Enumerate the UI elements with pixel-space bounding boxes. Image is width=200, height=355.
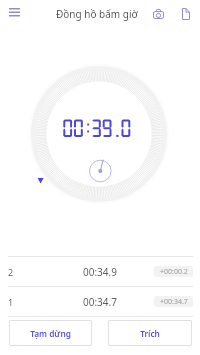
button[interactable]: 1	[0, 287, 200, 316]
staticText: 00:34.9	[83, 265, 117, 279]
staticText: +00:00.2	[160, 267, 188, 277]
button[interactable]: Trích	[108, 320, 192, 346]
button[interactable]: Tạm dừng	[9, 320, 92, 346]
button[interactable]: Menu	[4, 2, 24, 22]
staticText: 1	[8, 296, 14, 308]
button[interactable]: Document	[176, 4, 195, 23]
staticText: 00:34.7	[83, 295, 117, 309]
staticText: Tạm dừng	[30, 328, 71, 339]
staticText: +00:34.7	[160, 297, 188, 307]
staticText: 2	[8, 266, 14, 278]
button[interactable]: Camera	[149, 4, 168, 23]
staticText: Đồng hồ bấm giờ	[56, 7, 138, 21]
button[interactable]: 2	[0, 257, 200, 286]
staticText: Trích	[140, 328, 160, 339]
